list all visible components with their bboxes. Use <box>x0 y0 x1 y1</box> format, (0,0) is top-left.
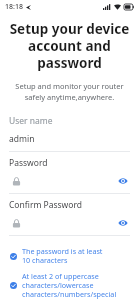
staticText: Password <box>9 157 48 169</box>
button[interactable]: admin <box>9 130 130 147</box>
button[interactable]: At least 2 of uppercase characters/lower… <box>9 271 130 300</box>
button[interactable]: Password locked <box>9 174 23 188</box>
button[interactable]: The password is at least 10 characters <box>9 246 130 266</box>
staticText: The password is at least 10 characters <box>22 246 103 266</box>
button[interactable]: Show password <box>115 173 130 188</box>
staticText: Setup your device account and password <box>6 20 133 72</box>
staticText: User name <box>9 115 53 127</box>
button[interactable]: Show password <box>115 215 130 230</box>
staticText: Setup and monitor your router safely any… <box>8 81 131 102</box>
staticText: At least 2 of uppercase characters/lower… <box>22 271 117 300</box>
staticText: 18:18 <box>5 2 23 12</box>
button[interactable]: Password locked <box>9 216 23 230</box>
staticText: Confirm Password <box>9 199 82 211</box>
staticText: admin <box>9 133 35 145</box>
